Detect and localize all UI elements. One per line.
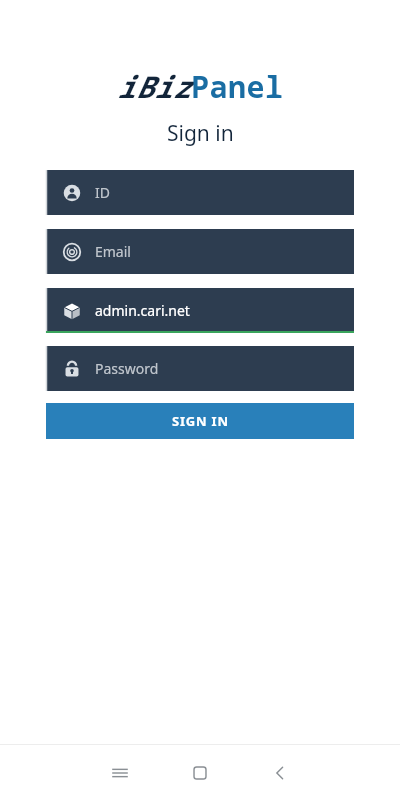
- button[interactable]: Home: [160, 745, 240, 800]
- button[interactable]: Recents: [80, 745, 160, 800]
- button[interactable]: Back: [240, 745, 320, 800]
- staticText: Password: [95, 359, 159, 378]
- staticText: iBizPanel: [117, 66, 284, 107]
- staticText: SIGN IN: [172, 412, 229, 430]
- staticText: Sign in: [167, 119, 234, 148]
- button[interactable]: ID: [46, 170, 354, 215]
- button[interactable]: Password: [46, 346, 354, 391]
- button[interactable]: Email: [46, 229, 354, 274]
- staticText: Email: [95, 242, 131, 261]
- button[interactable]: admin.cari.net: [46, 288, 354, 333]
- staticText: admin.cari.net: [95, 301, 190, 320]
- button[interactable]: SIGN IN: [46, 403, 354, 439]
- staticText: ID: [95, 183, 110, 202]
